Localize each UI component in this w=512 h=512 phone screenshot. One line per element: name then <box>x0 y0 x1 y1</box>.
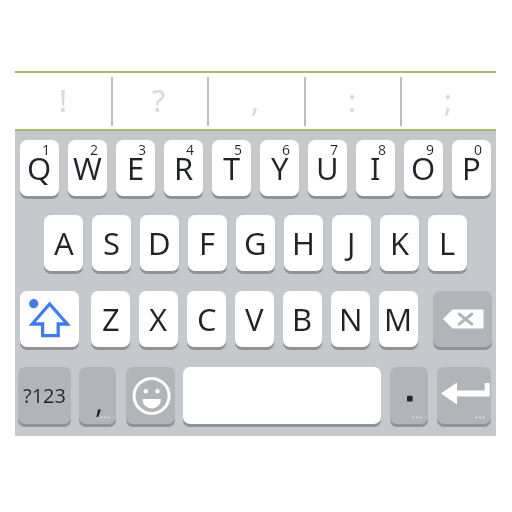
staticText: J <box>347 222 356 264</box>
staticText: G <box>244 222 267 264</box>
staticText: B <box>292 298 313 340</box>
staticText: , <box>251 80 260 121</box>
button[interactable]: J <box>332 215 371 271</box>
staticText: R <box>174 147 194 189</box>
staticText: Z <box>102 298 120 340</box>
staticText: Q <box>27 147 52 189</box>
staticText: , <box>95 380 104 422</box>
button[interactable] <box>126 367 175 424</box>
staticText: M <box>384 298 413 340</box>
button[interactable]: Z <box>91 291 130 347</box>
staticText: K <box>390 222 410 264</box>
button[interactable]: Q <box>20 140 59 196</box>
staticText: 5 <box>234 140 243 159</box>
staticText: 3 <box>138 140 147 159</box>
button[interactable]: V <box>235 291 274 347</box>
button[interactable]: D <box>140 215 179 271</box>
staticText: ! <box>59 80 68 121</box>
button[interactable]: E <box>116 140 155 196</box>
staticText: C <box>197 298 217 340</box>
staticText: 0 <box>474 140 483 159</box>
button[interactable]: A <box>44 215 83 271</box>
button[interactable] <box>437 367 491 424</box>
staticText: V <box>245 298 264 340</box>
staticText: S <box>103 222 121 264</box>
button[interactable]: G <box>236 215 275 271</box>
staticText: 2 <box>90 140 99 159</box>
staticText: : <box>348 80 357 121</box>
button[interactable]: ? <box>111 73 207 127</box>
staticText: I <box>370 147 381 189</box>
staticText: 6 <box>282 140 291 159</box>
button[interactable]: ; <box>400 73 496 127</box>
button[interactable]: O <box>404 140 443 196</box>
button[interactable]: S <box>92 215 131 271</box>
button[interactable]: M <box>379 291 418 347</box>
button[interactable]: C <box>187 291 226 347</box>
staticText: T <box>223 147 241 189</box>
button[interactable]: U <box>308 140 347 196</box>
button[interactable]: I <box>356 140 395 196</box>
button[interactable]: Y <box>260 140 299 196</box>
staticText: H <box>292 222 315 264</box>
staticText: 7 <box>330 140 339 159</box>
staticText: ?123 <box>23 382 66 409</box>
staticText: X <box>149 298 168 340</box>
staticText: O <box>411 147 436 189</box>
button[interactable] <box>433 291 492 347</box>
staticText: A <box>54 222 74 264</box>
button[interactable]: , <box>207 73 303 127</box>
staticText: 9 <box>426 140 435 159</box>
staticText: N <box>339 298 363 340</box>
button[interactable]: W <box>68 140 107 196</box>
staticText: ; <box>444 80 453 121</box>
staticText: Y <box>271 147 289 189</box>
staticText: U <box>316 147 339 189</box>
button[interactable]: ! <box>15 73 111 127</box>
button[interactable] <box>183 367 381 424</box>
button[interactable]: P <box>452 140 491 196</box>
button[interactable]: , <box>79 367 116 424</box>
staticText: P <box>462 147 481 189</box>
staticText: ? <box>152 80 166 121</box>
button[interactable] <box>390 367 428 424</box>
staticText: F <box>199 222 216 264</box>
button[interactable]: ?123 <box>18 367 71 424</box>
button[interactable]: B <box>283 291 322 347</box>
staticText: L <box>439 222 456 264</box>
button[interactable]: N <box>331 291 370 347</box>
staticText: 8 <box>378 140 387 159</box>
button[interactable]: T <box>212 140 251 196</box>
staticText: 1 <box>42 140 51 159</box>
button[interactable]: F <box>188 215 227 271</box>
button[interactable]: L <box>428 215 467 271</box>
staticText: 4 <box>186 140 195 159</box>
staticText: W <box>73 147 102 189</box>
button[interactable]: K <box>380 215 419 271</box>
button[interactable]: H <box>284 215 323 271</box>
button[interactable]: X <box>139 291 178 347</box>
button[interactable] <box>20 291 79 347</box>
button[interactable]: : <box>304 73 400 127</box>
button[interactable]: R <box>164 140 203 196</box>
staticText: D <box>148 222 171 264</box>
staticText: E <box>127 147 145 189</box>
